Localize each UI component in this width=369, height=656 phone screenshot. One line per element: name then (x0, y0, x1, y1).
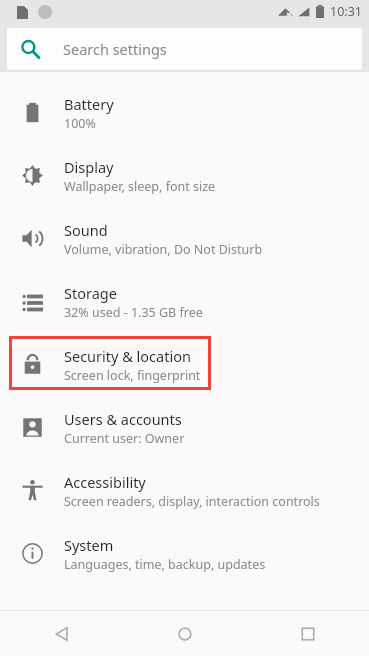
button[interactable]: Security & location (0, 333, 369, 396)
staticText: 32% used - 1.35 GB free (64, 304, 203, 321)
staticText: Current user: Owner (64, 430, 185, 447)
staticText: Sound (64, 220, 108, 240)
staticText: Battery (64, 94, 114, 114)
button[interactable]: Users & accounts (0, 396, 369, 459)
button[interactable]: Home (123, 611, 246, 656)
staticText: Screen lock, fingerprint (64, 367, 201, 384)
staticText: Display (64, 157, 114, 177)
button[interactable]: System (0, 522, 369, 585)
staticText: Users & accounts (64, 409, 182, 429)
button[interactable]: Search (7, 28, 362, 70)
button[interactable]: Recent apps (246, 611, 369, 656)
staticText: Volume, vibration, Do Not Disturb (64, 241, 263, 258)
button[interactable]: Back (0, 611, 123, 656)
staticText: Wallpaper, sleep, font size (64, 178, 216, 195)
staticText: 100% (64, 115, 96, 132)
staticText: 10:31 (330, 3, 362, 20)
button[interactable]: Storage (0, 270, 369, 333)
other: Search (20, 39, 40, 59)
button[interactable]: Display (0, 144, 369, 207)
staticText: Accessibility (64, 472, 146, 492)
button[interactable]: Battery (0, 81, 369, 144)
staticText: System (64, 535, 114, 555)
staticText: Security & location (64, 346, 191, 366)
staticText: Languages, time, backup, updates (64, 556, 266, 573)
staticText: Storage (64, 283, 117, 303)
staticText: Search settings (63, 39, 167, 59)
staticText: Screen readers, display, interaction con… (64, 493, 320, 510)
button[interactable]: Accessibility (0, 459, 369, 522)
button[interactable]: Sound (0, 207, 369, 270)
